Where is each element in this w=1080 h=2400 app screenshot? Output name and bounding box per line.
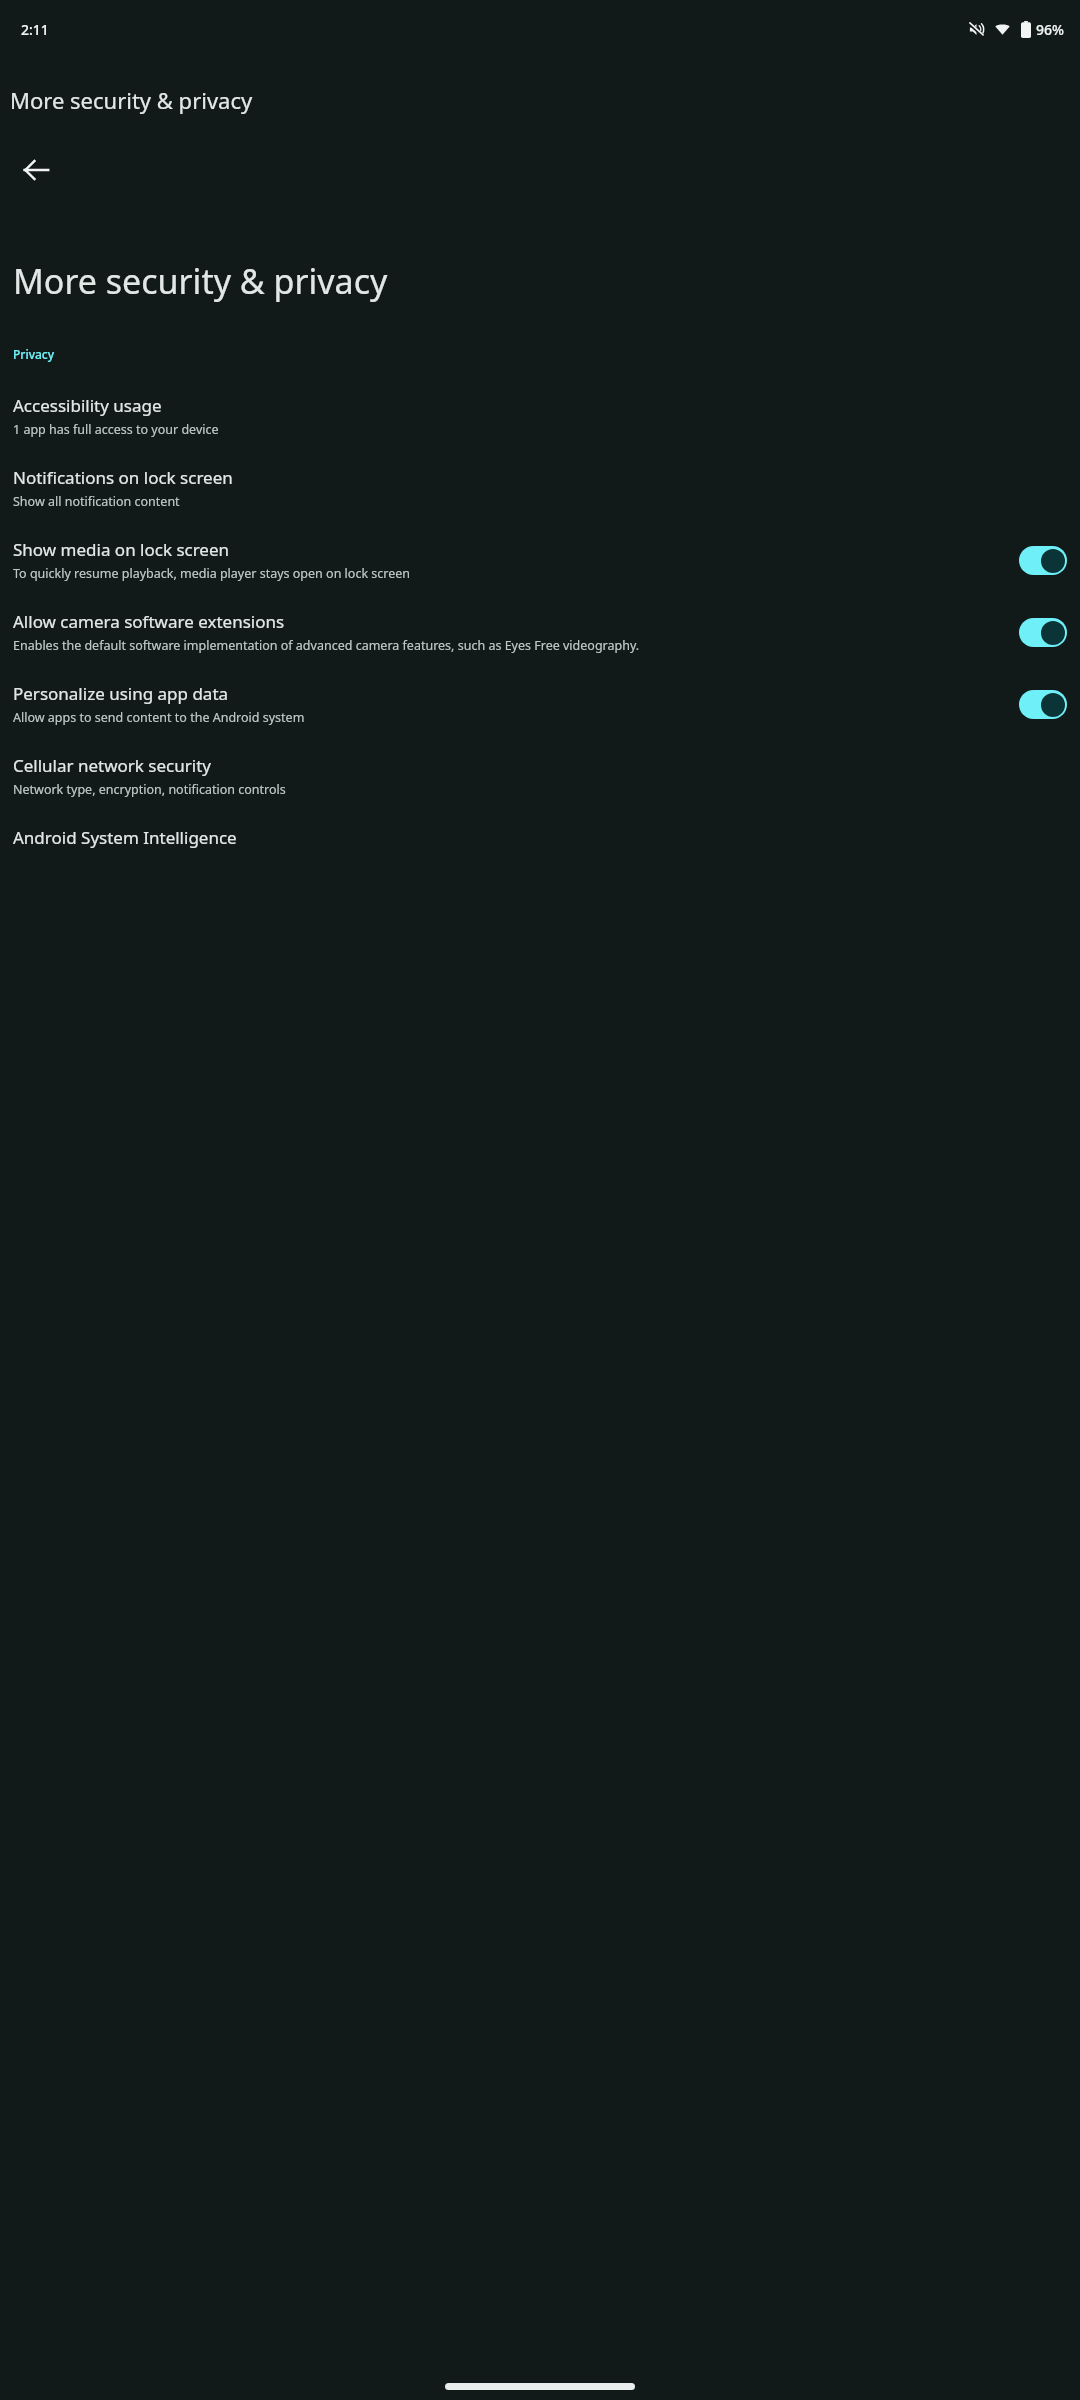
staticText: 96% [1036,20,1064,39]
button[interactable]: Android System Intelligence [0,812,1080,863]
staticText: Accessibility usage [13,394,162,417]
staticText: Personalize using app data [13,682,229,705]
staticText: Show all notification content [13,493,180,510]
button[interactable]: Accessibility usage [0,380,1080,452]
staticText: 2:11 [21,20,49,39]
staticText: Allow camera software extensions [13,610,285,633]
button[interactable]: Allow camera software extensions [0,596,1080,668]
button[interactable]: Personalize using app data [0,668,1080,740]
button[interactable]: Cellular network security [0,740,1080,812]
staticText: Network type, encryption, notification c… [13,781,286,798]
staticText: To quickly resume playback, media player… [13,565,411,582]
staticText: Notifications on lock screen [13,466,233,489]
staticText: Enables the default software implementat… [13,637,640,654]
staticText: Privacy [13,346,55,362]
staticText: More security & privacy [13,258,388,304]
button[interactable]: Back [8,142,64,198]
staticText: Android System Intelligence [13,826,237,849]
button[interactable]: Notifications on lock screen [0,452,1080,524]
staticText: More security & privacy [10,85,253,115]
button[interactable]: Show media on lock screen [0,524,1080,596]
staticText: Allow apps to send content to the Androi… [13,709,305,726]
staticText: 1 app has full access to your device [13,421,219,438]
button[interactable]: Toggle setting [1019,618,1067,647]
staticText: Cellular network security [13,754,211,777]
button[interactable]: Toggle setting [1019,690,1067,719]
staticText: Show media on lock screen [13,538,230,561]
button[interactable]: Toggle setting [1019,546,1067,575]
